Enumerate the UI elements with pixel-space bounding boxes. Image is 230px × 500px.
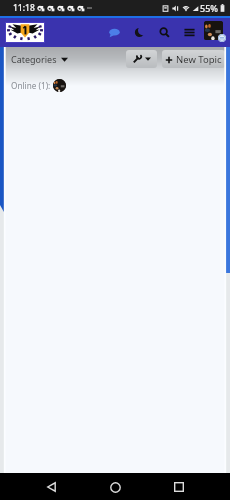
button[interactable]: Back <box>38 474 64 500</box>
button[interactable]: Recents <box>166 474 192 500</box>
button[interactable]: Tools <box>126 50 157 68</box>
button[interactable]: Categories <box>11 53 68 65</box>
staticText: 11:18 <box>13 2 35 14</box>
button[interactable]: Xstropolis home <box>6 23 44 42</box>
staticText: 55% <box>200 2 218 14</box>
button[interactable]: Messages <box>102 20 127 45</box>
button[interactable]: Online user <box>53 79 66 92</box>
button[interactable]: Home <box>102 474 128 500</box>
button[interactable]: Search <box>152 20 177 45</box>
button[interactable]: Menu <box>177 20 202 45</box>
button[interactable]: Dark mode <box>127 20 152 45</box>
button[interactable]: New Topic <box>162 50 225 68</box>
staticText: Categories <box>11 53 57 65</box>
staticText: New Topic <box>176 53 222 66</box>
button[interactable]: Profile <box>204 21 225 45</box>
staticText: Online (1): <box>11 80 51 91</box>
